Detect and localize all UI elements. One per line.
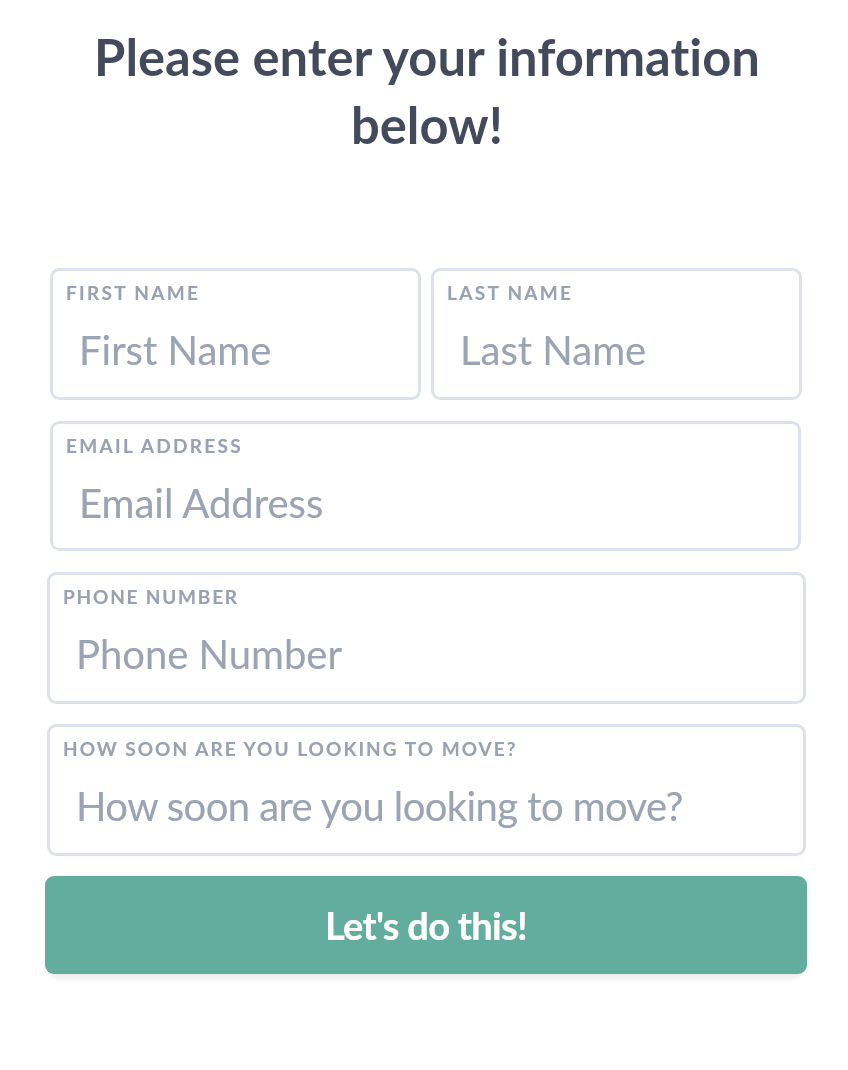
button[interactable]: FIRST NAME	[50, 268, 421, 400]
staticText: First Name	[79, 326, 272, 374]
button[interactable]: HOW SOON ARE YOU LOOKING TO MOVE?	[47, 724, 806, 856]
staticText: LAST NAME	[447, 281, 574, 304]
staticText: How soon are you looking to move?	[76, 782, 683, 830]
staticText: Let's do this!	[325, 902, 527, 948]
staticText: PHONE NUMBER	[63, 585, 239, 608]
staticText: FIRST NAME	[66, 281, 201, 304]
staticText: Please enter your information below!	[46, 26, 808, 155]
staticText: Last Name	[460, 326, 647, 374]
staticText: EMAIL ADDRESS	[66, 434, 243, 457]
button[interactable]: EMAIL ADDRESS	[50, 421, 801, 551]
staticText: HOW SOON ARE YOU LOOKING TO MOVE?	[63, 737, 518, 760]
button[interactable]: Let's do this!	[45, 876, 807, 974]
staticText: Email Address	[79, 479, 324, 527]
button[interactable]: PHONE NUMBER	[47, 572, 806, 704]
staticText: Phone Number	[76, 630, 343, 678]
button[interactable]: LAST NAME	[431, 268, 802, 400]
